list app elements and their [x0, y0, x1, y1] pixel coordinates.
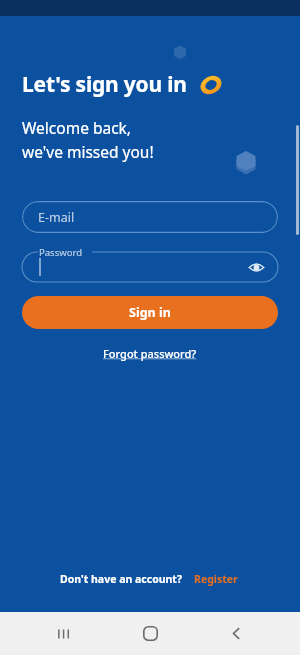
button[interactable]: Back — [214, 612, 258, 655]
button[interactable]: Password — [22, 246, 278, 282]
staticText: Let's sign you in — [22, 70, 187, 99]
staticText: Sign in — [129, 304, 171, 321]
staticText: Don't have an account? — [60, 572, 182, 586]
staticText: Password — [39, 246, 82, 259]
button[interactable]: Home — [128, 612, 172, 655]
button[interactable]: Forgot password? — [99, 344, 201, 363]
staticText: E-mail — [38, 209, 75, 226]
button[interactable]: E-mail — [22, 201, 278, 233]
button[interactable]: Sign in — [22, 296, 278, 329]
staticText: we've missed you! — [22, 141, 154, 162]
button[interactable]: Recents — [42, 612, 86, 655]
button[interactable]: Show password — [246, 257, 266, 277]
staticText: Welcome back, — [22, 117, 132, 138]
button[interactable]: Register — [192, 570, 240, 588]
staticText: Register — [194, 572, 238, 586]
staticText: Forgot password? — [103, 346, 197, 361]
